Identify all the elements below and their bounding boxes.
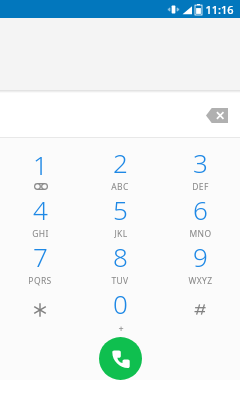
button[interactable]: 5 [80,192,160,239]
staticText: ABC [111,181,129,192]
button[interactable]: 2 [80,145,160,192]
staticText: TUV [111,275,129,286]
staticText: WXYZ [188,275,213,286]
staticText: + [118,322,124,333]
staticText: 9 [193,239,208,274]
button[interactable]: 6 [160,192,240,239]
staticText: 3 [193,145,208,180]
button[interactable]: 9 [160,239,240,286]
button[interactable]: Star [0,286,80,333]
staticText: DEF [192,181,209,192]
staticText: JKL [114,228,128,239]
staticText: 2 [113,145,128,180]
button[interactable]: Backspace [200,100,234,130]
staticText: 11:16 [205,2,234,17]
staticText: 0 [113,286,128,321]
staticText: 1 [33,147,48,182]
button[interactable]: Call [99,337,142,380]
staticText: 7 [33,239,48,274]
button[interactable]: 1 [0,145,80,192]
staticText: 5 [113,192,128,227]
staticText: PQRS [28,275,52,286]
button[interactable]: 8 [80,239,160,286]
button[interactable]: 4 [0,192,80,239]
staticText: GHI [32,228,49,239]
button[interactable]: 0 [80,286,160,333]
button[interactable]: 3 [160,145,240,192]
staticText: MNO [189,228,212,239]
staticText: 8 [113,239,128,274]
button[interactable]: Pound [160,286,240,333]
staticText: 4 [33,192,48,227]
button[interactable]: 7 [0,239,80,286]
staticText: 6 [193,192,208,227]
